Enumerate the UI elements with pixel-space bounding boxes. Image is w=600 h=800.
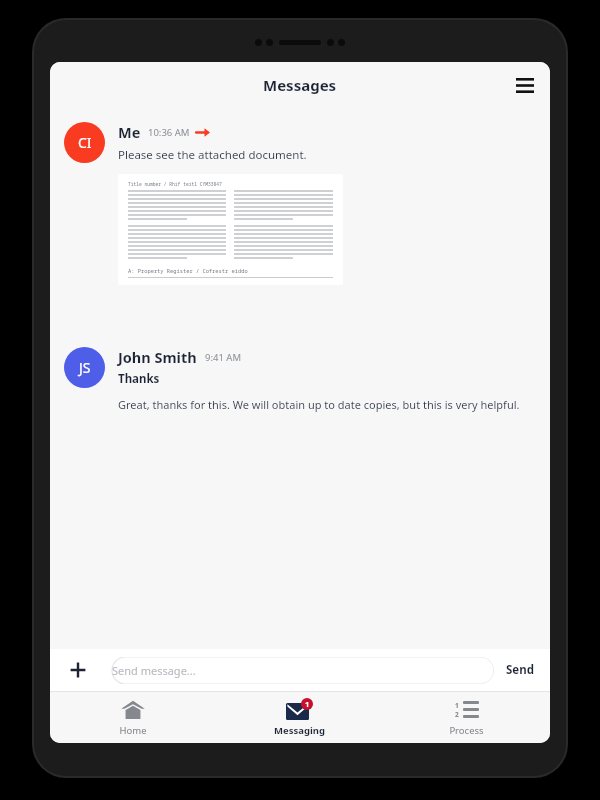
staticText: Please see the attached document. — [118, 147, 307, 163]
staticText: 10:36 AM — [148, 126, 190, 139]
button[interactable]: 1 — [216, 691, 383, 743]
staticText: Thanks — [118, 371, 160, 387]
staticText: 1 — [305, 699, 310, 709]
button[interactable]: Home — [50, 691, 216, 743]
staticText: Messages — [263, 75, 337, 95]
button[interactable]: Send — [504, 656, 536, 684]
staticText: John Smith — [118, 347, 197, 367]
staticText: JS — [79, 358, 91, 377]
button[interactable]: JS — [64, 347, 105, 388]
staticText: Process — [449, 724, 484, 737]
button[interactable]: Attached document preview — [118, 174, 343, 285]
button[interactable]: Add attachment — [64, 656, 92, 684]
staticText: Send — [506, 662, 534, 678]
staticText: 2 — [455, 710, 459, 718]
staticText: 1 — [455, 701, 459, 710]
staticText: Messaging — [274, 724, 325, 737]
staticText: Great, thanks for this. We will obtain u… — [118, 397, 520, 412]
staticText: Title number / Rhif teitl CYM33847 — [128, 181, 222, 187]
button[interactable]: 1 — [383, 691, 550, 743]
staticText: Send message... — [112, 663, 196, 678]
staticText: Home — [119, 724, 147, 737]
button[interactable]: Menu — [508, 68, 542, 102]
staticText: CI — [78, 133, 92, 152]
staticText: Me — [118, 122, 141, 142]
staticText: A: Property Register / Cofrestr eiddo — [128, 267, 248, 274]
button[interactable]: Send message... — [99, 657, 494, 684]
staticText: 9:41 AM — [205, 351, 242, 364]
button[interactable]: CI — [64, 122, 105, 163]
